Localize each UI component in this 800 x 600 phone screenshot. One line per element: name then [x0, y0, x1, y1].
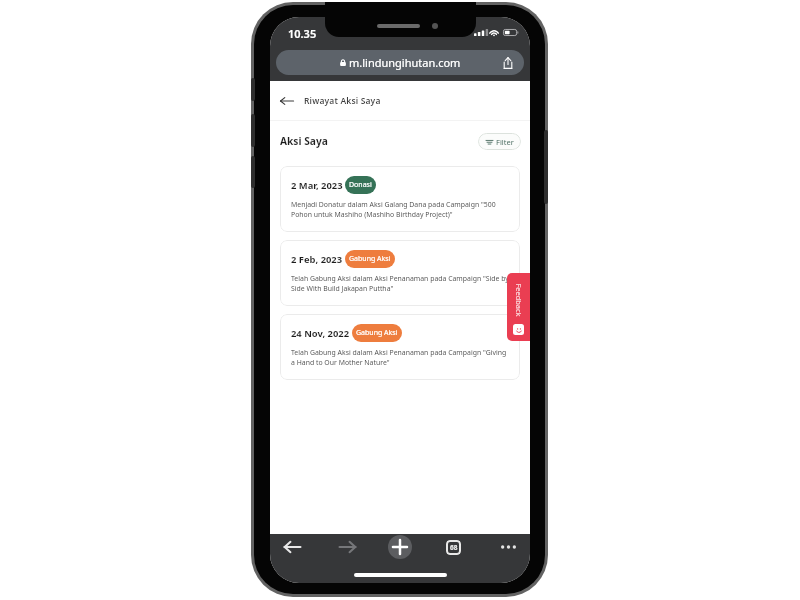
- staticText: 24 Nov, 2022: [291, 327, 350, 340]
- staticText: Donasi: [349, 180, 372, 190]
- button[interactable]: 24 Nov, 2022: [280, 314, 520, 380]
- button[interactable]: m.lindungihutan.com: [276, 50, 524, 75]
- staticText: Gabung Aksi: [356, 328, 398, 338]
- button[interactable]: Forward: [333, 534, 361, 560]
- staticText: 2 Mar, 2023: [291, 179, 343, 192]
- button[interactable]: Feedback: [507, 273, 530, 341]
- button[interactable]: 2 Mar, 2023: [280, 166, 520, 232]
- button[interactable]: New tab: [388, 535, 412, 559]
- staticText: 68: [450, 543, 458, 552]
- staticText: 10.35: [288, 26, 317, 39]
- button[interactable]: Share: [501, 56, 515, 70]
- button[interactable]: 2 Feb, 2023: [280, 240, 520, 306]
- staticText: Feedback: [513, 283, 523, 316]
- staticText: Telah Gabung Aksi dalam Aksi Penanaman p…: [291, 274, 509, 293]
- staticText: m.lindungihutan.com: [349, 55, 461, 70]
- staticText: Menjadi Donatur dalam Aksi Galang Dana p…: [291, 200, 496, 219]
- staticText: Gabung Aksi: [349, 254, 391, 264]
- button[interactable]: Filter: [478, 133, 521, 150]
- staticText: 2 Feb, 2023: [291, 253, 343, 266]
- staticText: Filter: [496, 137, 514, 147]
- staticText: Aksi Saya: [280, 134, 328, 148]
- button[interactable]: Tabs: [439, 534, 467, 560]
- staticText: Telah Gabung Aksi dalam Aksi Penanaman p…: [291, 348, 507, 367]
- staticText: Riwayat Aksi Saya: [304, 95, 381, 107]
- button[interactable]: More: [494, 534, 522, 560]
- button[interactable]: Back: [278, 93, 296, 109]
- button[interactable]: Back: [278, 534, 306, 560]
